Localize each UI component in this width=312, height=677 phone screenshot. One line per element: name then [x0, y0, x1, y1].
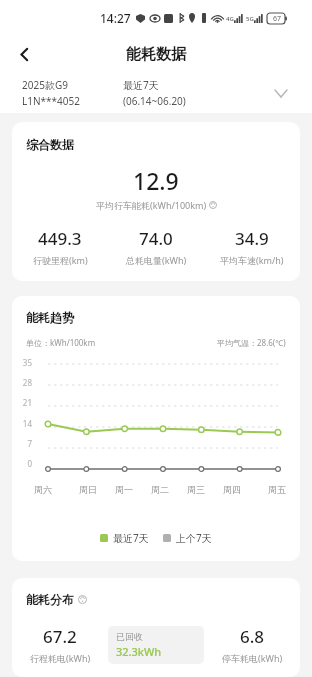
staticText: 平均行车能耗(kWh/100km) [96, 199, 207, 211]
staticText: 32.3kWh [116, 644, 162, 659]
staticText: 67.2 [43, 625, 77, 648]
button[interactable]: Back [8, 38, 40, 70]
staticText: 14 [22, 418, 32, 429]
staticText: 6.8 [240, 625, 265, 648]
staticText: 28 [22, 377, 32, 388]
staticText: 能耗趋势 [26, 310, 74, 325]
staticText: 74.0 [139, 227, 173, 250]
staticText: 能耗分布 [26, 592, 74, 607]
staticText: 21 [22, 397, 32, 408]
staticText: 449.3 [38, 227, 82, 250]
staticText: 周六 [34, 484, 52, 495]
button[interactable]: 2025款G9 [0, 72, 312, 113]
staticText: 周一 [115, 484, 133, 495]
staticText: 周二 [151, 484, 169, 495]
staticText: 0 [27, 458, 32, 469]
staticText: 上个7天 [176, 531, 212, 545]
staticText: 67 [273, 14, 282, 24]
staticText: 总耗电量(kWh) [126, 254, 187, 266]
staticText: 已回收 [116, 631, 143, 642]
button[interactable]: 综合数据 [12, 122, 300, 281]
staticText: 周四 [223, 484, 241, 495]
staticText: 周日 [79, 484, 97, 495]
staticText: 周五 [268, 484, 286, 495]
staticText: 周三 [187, 484, 205, 495]
button[interactable]: 能耗分布 [12, 578, 300, 677]
staticText: 行程耗电(kWh) [30, 652, 91, 664]
staticText: 单位：kWh/100km [26, 337, 96, 348]
staticText: 平均车速(km/h) [220, 254, 284, 266]
staticText: 综合数据 [26, 137, 74, 152]
staticText: 平均气温：28.6(℃) [217, 337, 286, 348]
staticText: 停车耗电(kWh) [222, 652, 283, 664]
staticText: 能耗数据 [126, 45, 186, 64]
staticText: 34.9 [235, 227, 269, 250]
staticText: 14:27 [100, 10, 131, 26]
staticText: 7 [27, 438, 32, 449]
staticText: (06.14~06.20) [123, 94, 186, 108]
staticText: 最近7天 [113, 531, 149, 545]
staticText: L1N***4052 [22, 94, 80, 108]
staticText: 行驶里程(km) [33, 254, 88, 266]
staticText: 4G [226, 15, 234, 23]
other: Expand date range [272, 84, 290, 102]
staticText: 最近7天 [123, 78, 159, 92]
staticText: 5G [246, 15, 254, 23]
staticText: 2025款G9 [22, 78, 68, 92]
staticText: 12.9 [133, 165, 179, 196]
staticText: 35 [22, 357, 32, 368]
